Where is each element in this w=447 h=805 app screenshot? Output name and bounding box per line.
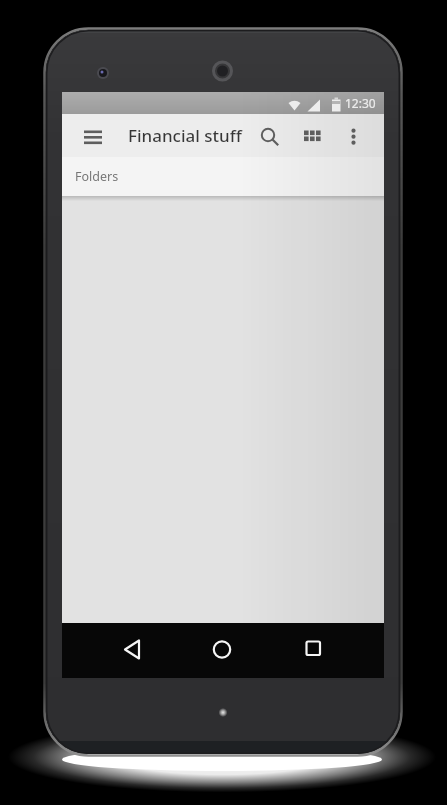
button[interactable] — [289, 629, 337, 673]
button[interactable] — [198, 629, 246, 673]
button[interactable] — [74, 120, 104, 150]
button[interactable] — [340, 120, 366, 150]
button[interactable]: Folders — [62, 157, 384, 196]
staticText: Financial stuff — [128, 124, 242, 147]
staticText: 12:30 — [345, 95, 376, 111]
button[interactable] — [292, 120, 322, 150]
button[interactable] — [108, 629, 156, 673]
staticText: Folders — [75, 168, 119, 185]
button[interactable] — [254, 120, 284, 150]
